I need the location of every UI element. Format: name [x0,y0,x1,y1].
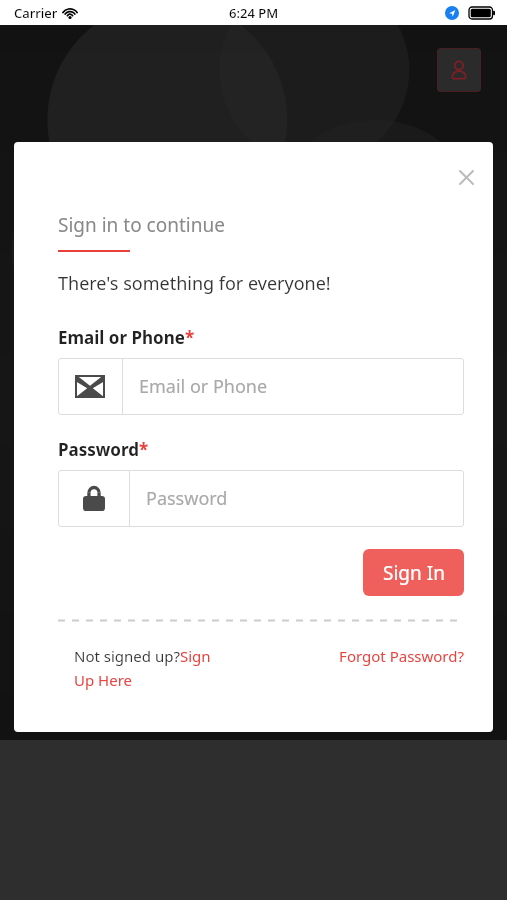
staticText: Not signed up?Sign Up Here [74,646,234,690]
staticText: Sign in to continue [58,212,225,238]
button[interactable]: Email or Phone [58,358,464,415]
button[interactable]: Profile [437,48,481,92]
button[interactable]: Close [451,162,481,192]
button[interactable]: Sign In [363,549,464,596]
staticText: Email or Phone* [58,326,195,349]
staticText: 6:24 PM [229,4,279,22]
staticText: There's something for everyone! [58,271,331,296]
staticText: Forgot Password? [339,646,464,666]
staticText: Email or Phone [139,374,268,399]
staticText: Sign In [383,560,445,586]
button[interactable]: Not signed up?Sign Up Here [74,646,234,690]
staticText: Carrier [14,4,58,22]
staticText: Password [146,486,228,511]
button[interactable]: Forgot Password? [235,646,464,666]
button[interactable]: Password [58,470,464,527]
staticText: Password* [58,438,149,461]
